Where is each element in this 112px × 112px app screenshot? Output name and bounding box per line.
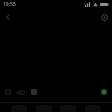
button[interactable]: Timer: [3, 87, 13, 97]
button[interactable]: Back: [2, 11, 14, 23]
button[interactable]: Gallery: [29, 87, 39, 97]
button[interactable]: Card: [16, 87, 26, 97]
button[interactable]: Send: [99, 87, 109, 97]
staticText: 19:55: [3, 1, 16, 8]
button[interactable]: Settings: [98, 11, 110, 23]
